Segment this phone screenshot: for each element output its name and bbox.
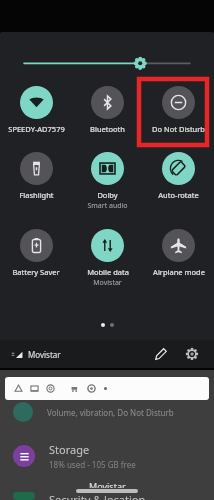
staticText: SPEEDY-AD7579 (8, 124, 65, 134)
staticText: Do Not Disturb (152, 124, 205, 134)
staticText: Auto-rotate (158, 190, 199, 200)
staticText: Mobile data (87, 267, 129, 277)
staticText: Security & location (49, 492, 146, 500)
button[interactable]: Edit (150, 343, 172, 365)
staticText: Smart audio (87, 201, 128, 211)
button[interactable]: Settings (181, 343, 203, 365)
staticText: Volume, vibration, Do Not Disturb (47, 407, 174, 418)
button[interactable] (0, 54, 214, 72)
button[interactable]: Mobile data (72, 227, 143, 290)
staticText: Airplane mode (153, 267, 205, 277)
staticText: Battery Saver (12, 267, 60, 277)
button[interactable]: Dolby (72, 150, 143, 213)
button[interactable] (5, 377, 209, 400)
staticText: Movistar (89, 480, 126, 488)
button[interactable]: Bluetooth (72, 84, 143, 136)
staticText: Dolby (97, 190, 118, 200)
button[interactable]: Do Not Disturb (143, 84, 214, 136)
staticText: Flashlight (19, 190, 54, 200)
button[interactable]: SPEEDY-AD7579 (0, 84, 72, 136)
staticText: Bluetooth (90, 124, 125, 134)
staticText: Movistar (93, 278, 122, 288)
staticText: Storage (49, 442, 90, 457)
button[interactable]: Airplane mode (143, 227, 214, 279)
staticText: Movistar (28, 349, 61, 360)
button[interactable]: Auto-rotate (143, 150, 214, 202)
button[interactable]: Battery Saver (0, 227, 72, 279)
button[interactable]: Flashlight (0, 150, 72, 202)
staticText: 18% used - 105 GB free (49, 459, 136, 470)
